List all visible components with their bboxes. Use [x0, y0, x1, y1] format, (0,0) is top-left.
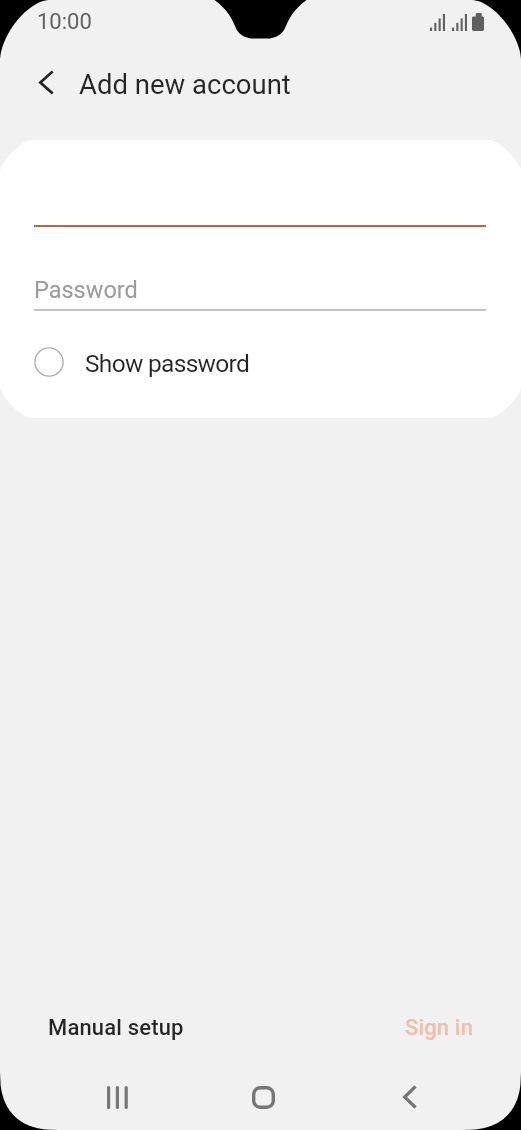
button[interactable]: Sign in: [391, 1006, 488, 1050]
staticText: Sign in: [405, 1015, 474, 1041]
staticText: 10:00: [37, 9, 92, 35]
button[interactable]: Navigate up: [23, 60, 68, 105]
button[interactable]: Recent apps: [44, 1064, 190, 1130]
staticText: Manual setup: [48, 1015, 184, 1041]
button[interactable]: Home: [190, 1064, 336, 1130]
button[interactable]: [0, 248, 521, 310]
button[interactable]: Email address: [0, 140, 521, 228]
staticText: Show password: [85, 349, 250, 378]
staticText: Add new account: [79, 68, 291, 100]
button[interactable]: Show password: [0, 333, 521, 393]
button[interactable]: Back: [336, 1064, 482, 1130]
button[interactable]: Manual setup: [34, 1006, 198, 1050]
staticText: Password: [34, 276, 138, 304]
